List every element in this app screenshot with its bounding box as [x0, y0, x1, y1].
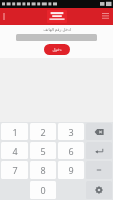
staticText: دخول — [52, 47, 62, 52]
button[interactable]: Enter — [86, 142, 112, 159]
button[interactable]: 6 — [58, 142, 84, 159]
button[interactable]: 2 — [30, 123, 56, 140]
staticText: 9 — [68, 164, 74, 176]
button[interactable]: 7 — [1, 161, 28, 179]
button[interactable]: Menu — [101, 12, 110, 21]
button[interactable]: 1 — [1, 123, 28, 140]
staticText: 7 — [12, 164, 18, 176]
button[interactable]: Backspace — [86, 123, 112, 140]
staticText: 6 — [68, 145, 74, 157]
staticText: ادخل رقم الهاتف — [43, 27, 71, 32]
staticText: 0 — [40, 184, 46, 196]
staticText: 2 — [40, 126, 46, 138]
button[interactable]: Next — [86, 161, 112, 179]
button[interactable]: 9 — [58, 161, 84, 179]
button[interactable]: 4 — [1, 142, 28, 159]
button[interactable]: 0 — [30, 181, 56, 199]
button[interactable]: 8 — [30, 161, 56, 179]
staticText: 3 — [68, 126, 74, 138]
staticText: 4 — [12, 145, 18, 157]
button[interactable]: دخول — [44, 44, 70, 55]
button[interactable]: 3 — [58, 123, 84, 140]
staticText: 8 — [40, 164, 46, 176]
button[interactable]: 5 — [30, 142, 56, 159]
button[interactable]: Settings — [86, 181, 112, 199]
staticText: 5 — [40, 145, 46, 157]
staticText: 1 — [12, 126, 18, 138]
button[interactable]: Logo — [47, 10, 67, 23]
